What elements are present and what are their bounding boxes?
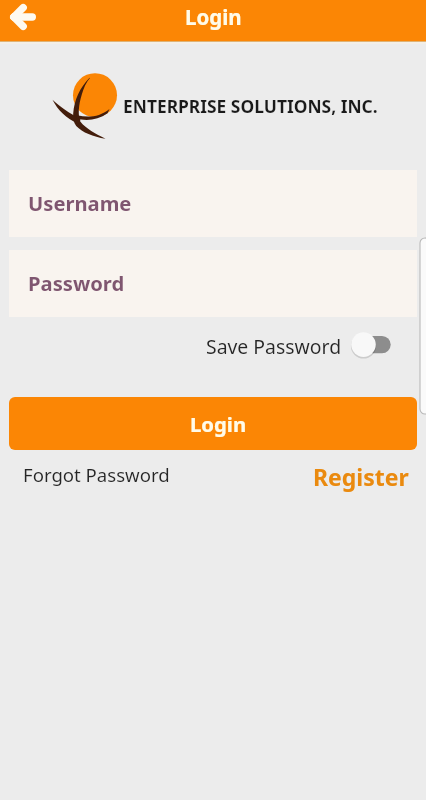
- staticText: Username: [28, 189, 132, 217]
- staticText: Register: [313, 461, 409, 492]
- staticText: Login: [190, 410, 247, 438]
- button[interactable]: Save Password toggle: [349, 330, 391, 360]
- staticText: Forgot Password: [23, 462, 170, 487]
- button[interactable]: Save Password: [206, 333, 342, 359]
- staticText: ENTERPRISE SOLUTIONS, INC.: [123, 94, 378, 118]
- staticText: Login: [185, 3, 242, 31]
- staticText: Password: [28, 269, 125, 297]
- button[interactable]: Back: [0, 0, 44, 41]
- button[interactable]: Password: [9, 250, 417, 317]
- button[interactable]: Username: [9, 170, 417, 237]
- button[interactable]: Register: [313, 461, 409, 492]
- button[interactable]: Forgot Password: [23, 462, 170, 487]
- button[interactable]: Login: [9, 397, 417, 450]
